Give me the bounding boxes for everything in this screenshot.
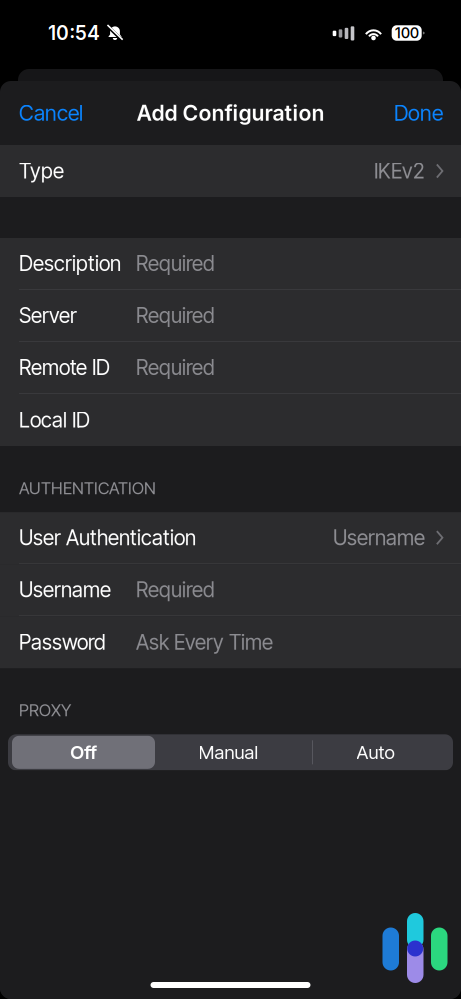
staticText: User Authentication — [19, 525, 196, 550]
button[interactable]: User Authentication — [0, 512, 461, 564]
staticText: 10:54 — [48, 21, 100, 45]
button[interactable]: Done — [392, 89, 445, 137]
button[interactable]: Manual — [155, 736, 302, 769]
button[interactable]: Cancel — [17, 89, 85, 137]
staticText: Remote ID — [19, 355, 110, 380]
staticText: Auto — [356, 741, 394, 764]
staticText: Cancel — [19, 100, 83, 126]
staticText: Required — [136, 577, 215, 602]
staticText: Required — [136, 303, 215, 328]
staticText: Description — [19, 251, 121, 276]
staticText: Type — [19, 158, 64, 183]
staticText: Local ID — [19, 407, 90, 432]
button[interactable]: Off — [12, 736, 155, 769]
staticText: Username — [333, 525, 425, 550]
staticText: Ask Every Time — [136, 630, 273, 655]
staticText: Server — [19, 303, 77, 328]
staticText: Off — [70, 741, 97, 764]
staticText: Done — [394, 100, 443, 126]
staticText: PROXY — [19, 700, 71, 720]
button[interactable]: Auto — [302, 736, 449, 769]
staticText: 100 — [395, 24, 419, 42]
staticText: Required — [136, 251, 215, 276]
staticText: Add Configuration — [136, 100, 324, 126]
staticText: AUTHENTICATION — [19, 478, 156, 498]
staticText: Username — [19, 577, 111, 602]
staticText: Manual — [198, 741, 258, 764]
button[interactable]: Type — [0, 145, 461, 197]
staticText: Password — [19, 630, 106, 655]
staticText: IKEv2 — [374, 158, 425, 183]
staticText: Required — [136, 355, 215, 380]
